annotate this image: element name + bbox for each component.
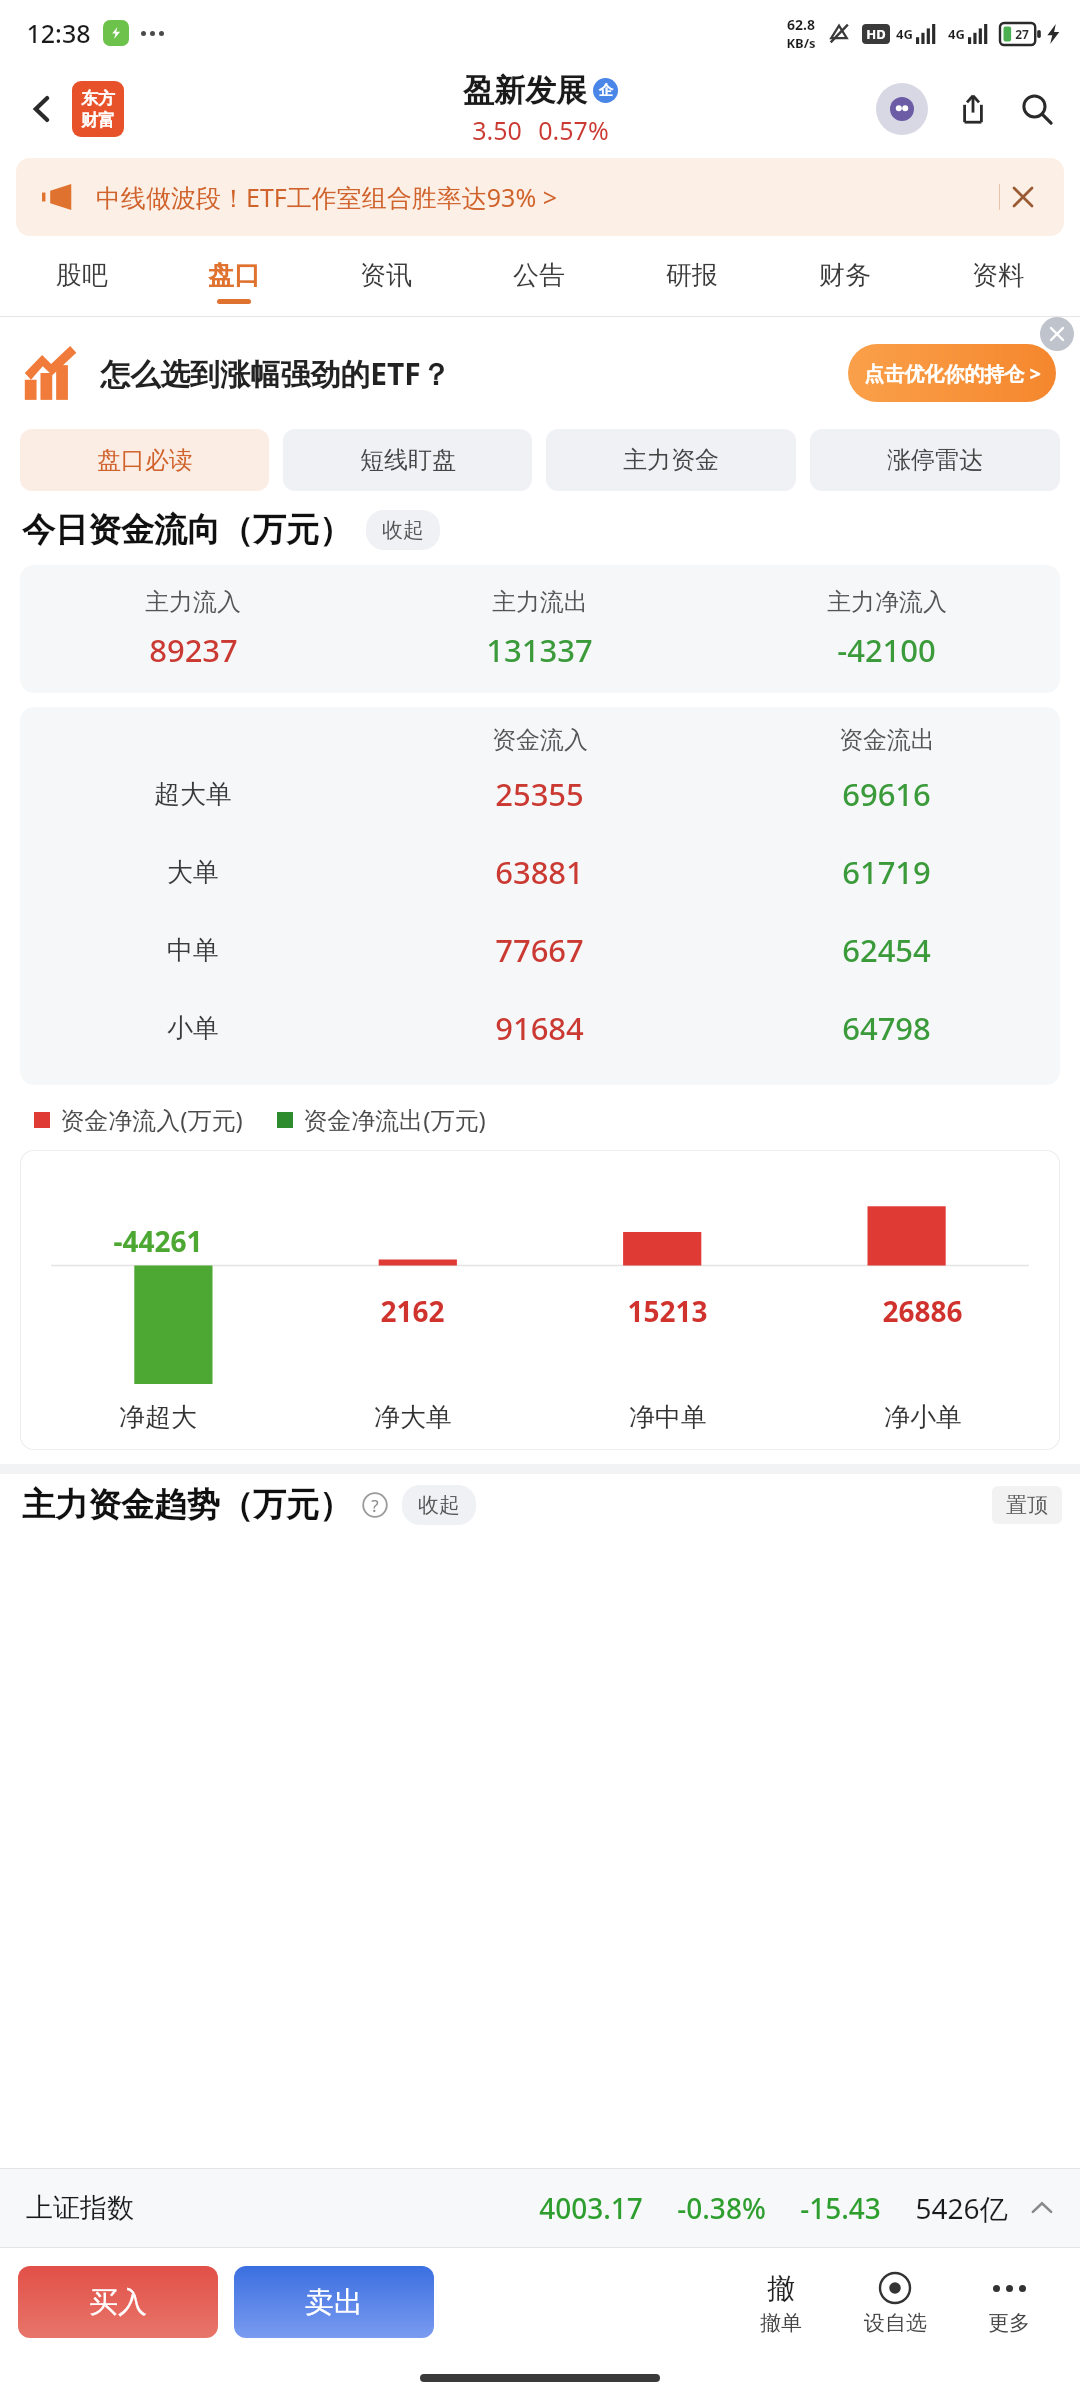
staticText: 涨停雷达 [887,445,983,475]
staticText: 企 [599,82,613,100]
staticText: ? [371,1494,379,1517]
button[interactable]: Back [14,81,70,137]
staticText: -15.43 [800,2189,881,2227]
staticText: 4G [948,25,965,43]
staticText: 盈新发展 [463,71,587,110]
button[interactable]: 中线做波段！ETF工作室组合胜率达93% > [16,158,1064,236]
staticText: 中单 [167,934,219,967]
staticText: 撤单 [760,2310,802,2336]
staticText: 89237 [149,629,238,671]
staticText: 资料 [972,259,1024,292]
staticText: 主力流出 [492,587,588,617]
button[interactable]: Search [1012,84,1062,134]
staticText: HD [866,25,886,43]
button[interactable]: 主力资金 [546,429,796,491]
staticText: 盘口必读 [97,445,193,475]
staticText: 怎么选到涨幅强劲的ETF？ [100,353,451,394]
button[interactable]: 设自选 [852,2268,938,2336]
staticText: 61719 [842,851,931,893]
staticText: 69616 [842,773,931,815]
staticText: KB/s [786,34,816,52]
staticText: 更多 [988,2310,1030,2336]
staticText: 资讯 [360,259,412,292]
staticText: 今日资金流向（万元） [22,509,352,551]
button[interactable]: 收起 [366,510,440,550]
staticText: 上证指数 [26,2191,134,2225]
button[interactable]: 研报 [615,246,768,316]
staticText: 短线盯盘 [360,445,456,475]
staticText: 91684 [495,1007,584,1049]
staticText: 主力净流入 [827,587,947,617]
staticText: 27 [1015,26,1029,42]
button[interactable]: 短线盯盘 [283,429,532,491]
button[interactable]: 更多 [966,2268,1052,2336]
staticText: 主力资金趋势（万元） [22,1484,352,1526]
button[interactable]: 买入 [18,2266,218,2338]
button[interactable]: 财务 [768,246,921,316]
staticText: 15213 [627,1292,708,1330]
staticText: 4003.17 [539,2189,643,2227]
staticText: 净超大 [119,1401,197,1434]
button[interactable]: Share [948,84,998,134]
staticText: 25355 [495,773,584,815]
staticText: 财务 [819,259,871,292]
staticText: 收起 [418,1492,460,1518]
staticText: 131337 [486,629,593,671]
button[interactable]: 涨停雷达 [810,429,1060,491]
button[interactable]: Close [1000,174,1046,220]
staticText: 超大单 [154,778,232,811]
staticText: 置顶 [1006,1492,1048,1518]
staticText: 64798 [842,1007,931,1049]
staticText: 0.57% [538,113,609,147]
button[interactable]: Dismiss ad [1040,317,1074,351]
staticText: 净小单 [884,1401,962,1434]
staticText: 小单 [167,1012,219,1045]
staticText: 卖出 [305,2284,363,2321]
staticText: 研报 [666,259,718,292]
button[interactable]: 盘口必读 [20,429,269,491]
button[interactable]: 资讯 [310,246,462,316]
button[interactable]: 上证指数 [0,2169,1080,2247]
button[interactable]: Account [876,83,928,135]
staticText: 3.50 [472,113,522,147]
staticText: 撤 [767,2271,795,2306]
button[interactable]: Help [360,1490,390,1520]
staticText: 东方 [81,88,115,109]
staticText: 5426亿 [915,2189,1008,2227]
button[interactable]: 撤 [738,2268,824,2336]
staticText: 资金流出 [839,725,935,755]
staticText: 财富 [81,110,115,131]
staticText: 26886 [882,1292,963,1330]
staticText: 大单 [167,856,219,889]
staticText: -0.38% [677,2189,766,2227]
staticText: 点击优化你的持仓 > [864,360,1041,387]
staticText: 盘口 [208,259,260,292]
staticText: -42100 [837,629,936,671]
staticText: 设自选 [864,2310,927,2336]
button[interactable]: 资料 [921,246,1074,316]
staticText: 资金净流出(万元) [303,1103,486,1136]
staticText: 资金净流入(万元) [60,1103,243,1136]
staticText: 2162 [380,1292,445,1330]
staticText: 收起 [382,517,424,543]
staticText: 净大单 [374,1401,452,1434]
button[interactable]: 卖出 [234,2266,434,2338]
staticText: 买入 [89,2284,147,2321]
staticText: 主力资金 [623,445,719,475]
staticText: 4G [896,25,913,43]
button[interactable]: 股吧 [6,246,158,316]
button[interactable]: 点击优化你的持仓 > [848,344,1056,402]
button[interactable]: 盘口 [158,246,310,316]
staticText: 中线做波段！ETF工作室组合胜率达93% > [96,180,557,214]
staticText: 资金流入 [492,725,588,755]
staticText: 12:38 [26,16,91,50]
button[interactable]: 东方 [72,81,124,137]
staticText: 62454 [842,929,931,971]
button[interactable]: 收起 [402,1485,476,1525]
button[interactable]: 公告 [462,246,615,316]
staticText: 77667 [495,929,584,971]
staticText: 62.8 [787,15,815,34]
button[interactable]: 置顶 [992,1486,1062,1524]
staticText: 63881 [495,851,584,893]
staticText: 股吧 [56,259,108,292]
